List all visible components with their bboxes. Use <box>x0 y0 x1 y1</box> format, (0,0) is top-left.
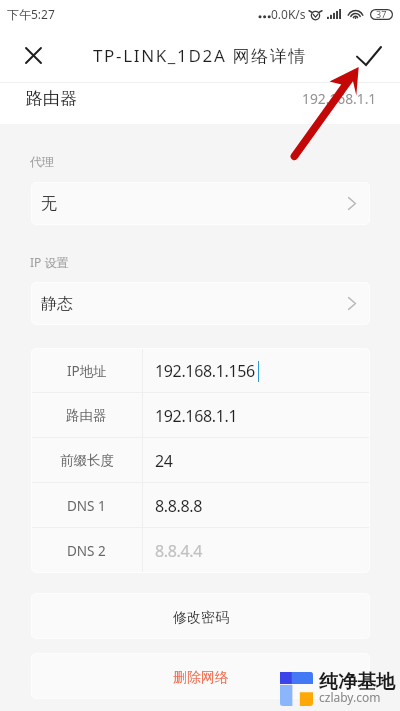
staticText: 路由器 <box>26 88 77 109</box>
button[interactable]: 无 <box>31 182 370 225</box>
button[interactable]: 修改密码 <box>31 593 370 639</box>
staticText: 192.168.1.156 <box>155 360 255 382</box>
staticText: 8.8.8.8 <box>155 495 203 517</box>
button[interactable]: 路由器 <box>31 393 370 438</box>
staticText: DNS 2 <box>67 542 106 560</box>
staticText: 代理 <box>30 154 54 169</box>
staticText: 0.0K/s <box>271 6 306 22</box>
staticText: czlaby.com <box>319 689 381 705</box>
staticText: 24 <box>155 450 173 472</box>
button[interactable]: 前缀长度 <box>31 438 370 483</box>
staticText: DNS 1 <box>67 497 106 515</box>
staticText: 192.168.1.1 <box>155 405 238 427</box>
staticText: 删除网络 <box>173 669 229 687</box>
button[interactable]: 保存 <box>351 38 386 73</box>
button[interactable]: 删除网络 <box>31 653 370 699</box>
button[interactable]: DNS 1 <box>31 483 370 528</box>
staticText: TP-LINK_1D2A 网络详情 <box>93 44 308 67</box>
staticText: 8.8.4.4 <box>155 540 203 562</box>
staticText: 无 <box>41 194 57 214</box>
staticText: 37 <box>376 8 387 20</box>
staticText: 下午5:27 <box>7 6 55 22</box>
staticText: 静态 <box>41 294 73 314</box>
button[interactable]: 关闭 <box>15 38 50 73</box>
button[interactable]: DNS 2 <box>31 528 370 573</box>
staticText: IP地址 <box>67 362 107 380</box>
staticText: 前缀长度 <box>60 452 114 469</box>
button[interactable]: 路由器 <box>0 83 400 114</box>
staticText: IP 设置 <box>30 254 69 270</box>
button[interactable]: IP地址 <box>31 348 370 393</box>
staticText: 修改密码 <box>173 609 229 627</box>
staticText: 纯净基地 <box>319 670 395 694</box>
staticText: 路由器 <box>66 407 107 424</box>
staticText: 192.168.1.1 <box>302 89 377 108</box>
button[interactable]: 静态 <box>31 282 370 325</box>
